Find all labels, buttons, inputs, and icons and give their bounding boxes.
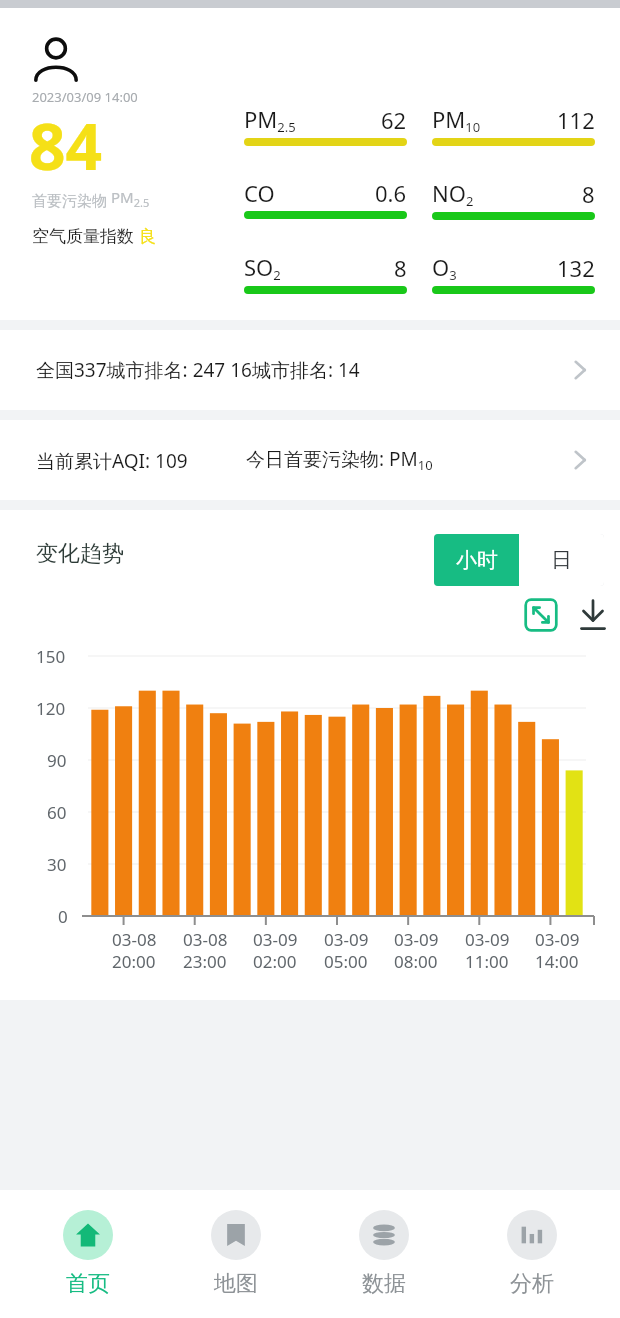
staticText: 首要污染物 [32,190,111,210]
staticText: 120 [36,697,66,720]
staticText: 8 [582,179,595,209]
staticText: 2023/03/09 14:00 [32,88,138,106]
staticText: 03-08 20:00 [112,928,157,973]
button[interactable]: PM2.5 [244,104,407,146]
staticText: 0.6 [375,178,407,208]
staticText: 03-08 23:00 [183,928,228,973]
staticText: 今日首要污染物: PM10 [246,446,433,474]
button[interactable]: 日 [519,534,604,586]
staticText: 空气质量指数 [32,224,139,247]
staticText: PM2.5 [244,104,296,135]
staticText: 03-09 11:00 [465,928,510,973]
staticText: NO2 [432,178,474,209]
button[interactable]: 小时 [434,534,519,586]
staticText: 84 [29,102,103,189]
staticText: O3 [432,252,457,283]
button[interactable]: Profile [32,36,80,84]
button[interactable]: 分析 [472,1206,592,1302]
staticText: 132 [557,253,595,283]
button[interactable]: SO2 [244,252,407,294]
staticText: 全国337城市排名: 247 16城市排名: 14 [36,357,360,383]
button[interactable]: 当前累计AQI: 109 [0,420,620,500]
staticText: 变化趋势 [36,540,124,568]
staticText: PM2.5 [111,187,150,210]
staticText: 0 [58,905,68,928]
button[interactable]: NO2 [432,178,595,220]
staticText: 03-09 14:00 [535,928,580,973]
button[interactable]: Fullscreen [524,598,558,632]
staticText: 150 [36,645,66,668]
staticText: 60 [47,801,67,824]
staticText: 良 [139,226,156,247]
staticText: 小时 [456,547,498,573]
staticText: 首页 [66,1270,110,1298]
button[interactable]: 全国337城市排名: 247 16城市排名: 14 [0,330,620,410]
staticText: 30 [47,853,67,876]
button[interactable]: O3 [432,252,595,294]
staticText: SO2 [244,252,281,283]
button[interactable]: Download [576,598,610,632]
staticText: 8 [394,253,407,283]
staticText: 90 [47,749,67,772]
button[interactable]: 首页 [28,1206,148,1302]
staticText: 03-09 05:00 [324,928,369,973]
staticText: 地图 [214,1270,258,1298]
staticText: 分析 [510,1270,554,1298]
button[interactable]: PM10 [432,104,595,146]
staticText: 当前累计AQI: 109 [36,448,188,474]
staticText: 62 [381,105,407,135]
button[interactable]: CO [244,178,407,219]
staticText: 03-09 02:00 [253,928,298,973]
staticText: 112 [557,105,595,135]
staticText: 日 [551,547,572,573]
button[interactable]: 数据 [324,1206,444,1302]
staticText: 数据 [362,1270,406,1298]
button[interactable]: 地图 [176,1206,296,1302]
staticText: PM10 [432,104,481,135]
staticText: CO [244,178,275,208]
staticText: 03-09 08:00 [394,928,439,973]
